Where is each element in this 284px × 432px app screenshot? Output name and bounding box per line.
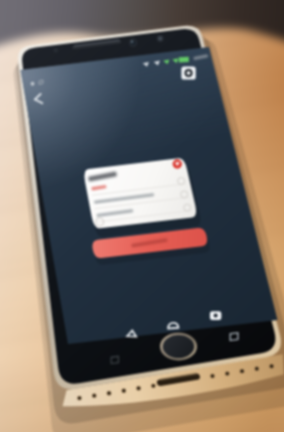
button[interactable]: Smartphone on a wooden desk showing a si… bbox=[0, 0, 284, 432]
